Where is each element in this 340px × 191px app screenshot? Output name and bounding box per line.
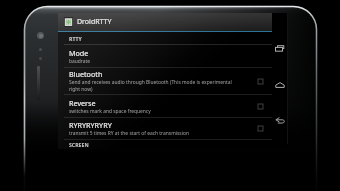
- staticText: Reverse: [69, 98, 96, 108]
- staticText: Bluetooth: [69, 69, 103, 79]
- button[interactable]: Reverse: [58, 95, 272, 118]
- button[interactable]: Mode: [58, 45, 272, 68]
- staticText: switches mark and space frequency: [69, 108, 151, 115]
- staticText: right now): [69, 86, 93, 93]
- staticText: RTTY: [69, 35, 82, 42]
- staticText: DroidRTTY: [77, 17, 112, 27]
- staticText: Mode: [69, 48, 89, 58]
- button[interactable]: RYRYRYRYRY: [58, 118, 272, 140]
- staticText: RYRYRYRYRY: [69, 120, 112, 130]
- button[interactable]: DroidRTTY: [58, 13, 272, 31]
- button[interactable]: Back: [272, 115, 288, 126]
- button[interactable]: Bluetooth: [58, 68, 272, 95]
- staticText: Send and receives audio through Bluetoot…: [69, 79, 232, 86]
- button[interactable]: Recents: [272, 43, 288, 54]
- staticText: baudrate: [69, 58, 90, 65]
- button[interactable]: Home: [272, 79, 288, 90]
- staticText: SCREEN: [69, 141, 89, 148]
- staticText: transmit 5 times RY at the start of each…: [69, 130, 189, 137]
